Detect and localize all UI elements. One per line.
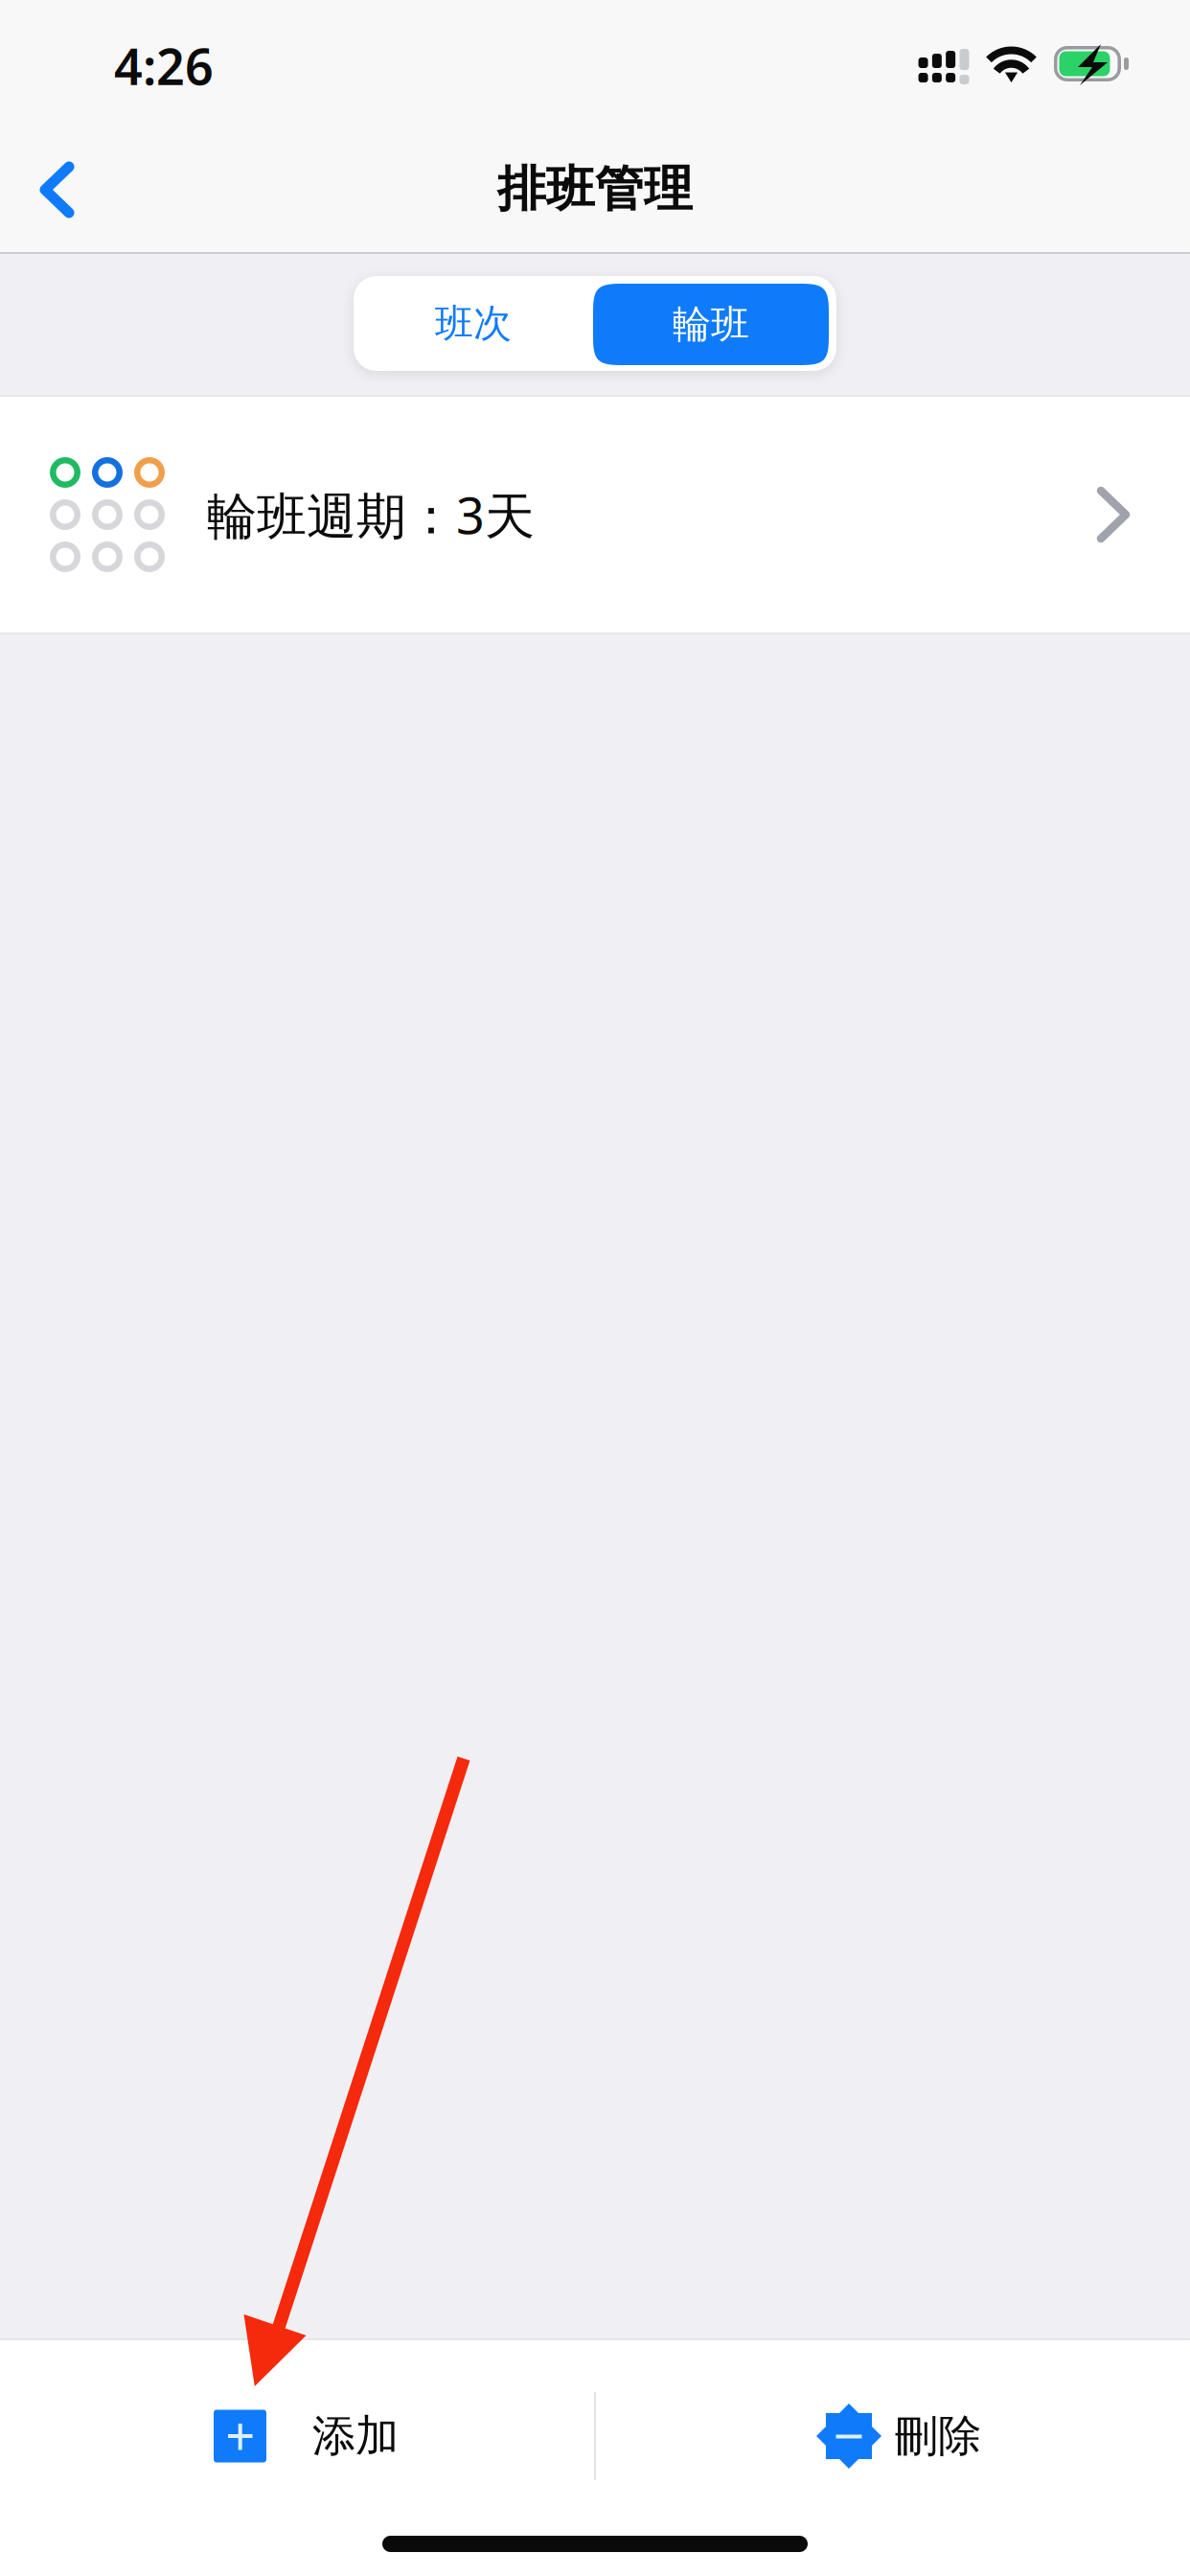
staticText: 班次: [435, 300, 512, 347]
staticText: 刪除: [895, 2409, 981, 2463]
staticText: 輪班週期：3天: [207, 482, 535, 548]
staticText: 4:26: [114, 33, 214, 99]
staticText: 添加: [312, 2409, 399, 2463]
button[interactable]: 添加: [0, 2340, 595, 2532]
button[interactable]: 班次: [354, 276, 593, 371]
button[interactable]: 輪班: [354, 276, 836, 371]
button[interactable]: Back: [0, 121, 115, 236]
button[interactable]: 輪班週期：3天: [0, 397, 1190, 632]
button[interactable]: 刪除: [595, 2340, 1190, 2532]
staticText: 排班管理: [497, 159, 693, 219]
staticText: 輪班: [673, 301, 749, 348]
